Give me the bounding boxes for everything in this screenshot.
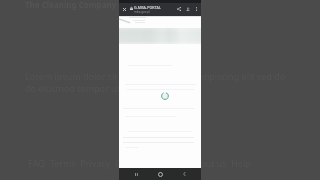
- staticText: FAQ Terms Privacy Contact Imprint About …: [28, 157, 251, 169]
- button[interactable]: Home: [153, 168, 167, 180]
- staticText: Lorem ipsum dolor sit amet consectetur a…: [25, 70, 286, 82]
- button[interactable]: Back: [177, 168, 191, 180]
- staticText: The Cleaning Company: [25, 0, 117, 10]
- button[interactable]: Close: [120, 5, 128, 13]
- staticText: do eiusmod tempor ut: [25, 82, 120, 94]
- button[interactable]: Recents: [129, 168, 143, 180]
- button[interactable]: More options: [193, 5, 200, 12]
- button[interactable]: Share: [175, 5, 183, 13]
- button[interactable]: Download: [184, 5, 192, 13]
- staticText: mba.gov.pl: [134, 10, 150, 14]
- staticText: G-MBA-PORTAL: [134, 5, 161, 10]
